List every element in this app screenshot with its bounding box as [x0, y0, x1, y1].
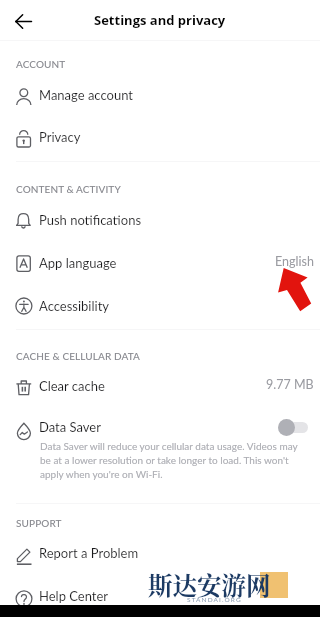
staticText: CONTENT & ACTIVITY	[16, 183, 121, 195]
staticText: Privacy	[39, 129, 81, 145]
staticText: Report a Problem	[39, 545, 139, 561]
staticText: 斯达安游网	[148, 567, 271, 602]
staticText: Push notifications	[39, 212, 142, 228]
staticText: SUPPORT	[16, 517, 62, 529]
staticText: STANDAI.ORG	[187, 596, 242, 604]
staticText: English	[275, 254, 314, 269]
staticText: App language	[39, 255, 117, 271]
button[interactable]: Privacy	[0, 122, 320, 151]
staticText: Data Saver	[39, 419, 101, 435]
button[interactable]: Data Saver	[0, 412, 320, 441]
button[interactable]: Help Center	[0, 581, 320, 610]
staticText: Manage account	[39, 87, 133, 103]
staticText: Clear cache	[39, 378, 105, 394]
staticText: Accessibility	[39, 298, 109, 314]
staticText: 9.77 MB	[266, 377, 314, 392]
staticText: Data Saver will reduce your cellular dat…	[40, 440, 306, 480]
staticText: ACCOUNT	[16, 58, 66, 70]
button[interactable]: Accessibility	[0, 291, 320, 320]
button[interactable]: Clear cache	[0, 371, 320, 400]
button[interactable]: Back	[9, 7, 37, 35]
button[interactable]: Push notifications	[0, 205, 320, 234]
button[interactable]: Manage account	[0, 80, 320, 109]
staticText: Help Center	[39, 588, 109, 604]
staticText: CACHE & CELLULAR DATA	[16, 350, 140, 362]
button[interactable]: Report a Problem	[0, 538, 320, 567]
button[interactable]: App language	[0, 248, 320, 277]
staticText: Settings and privacy	[94, 11, 226, 29]
